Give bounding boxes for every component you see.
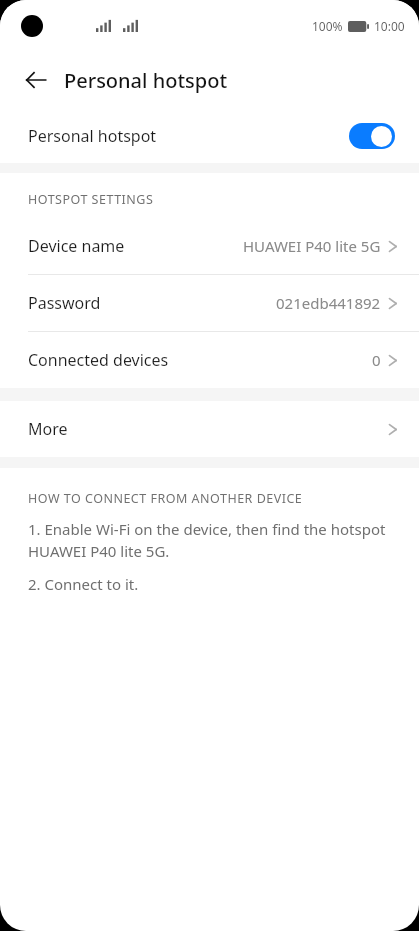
staticText: More: [28, 418, 68, 440]
button[interactable]: Password: [0, 275, 419, 331]
button[interactable]: Device name: [0, 218, 419, 274]
staticText: 021edb441892: [276, 293, 381, 313]
button[interactable]: More: [0, 401, 419, 457]
button[interactable]: Connected devices: [0, 332, 419, 388]
staticText: 10:00: [374, 18, 405, 34]
staticText: HOW TO CONNECT FROM ANOTHER DEVICE: [28, 490, 303, 507]
staticText: HUAWEI P40 lite 5G: [243, 236, 381, 256]
staticText: 1. Enable Wi-Fi on the device, then find…: [28, 519, 393, 562]
staticText: Connected devices: [28, 349, 169, 371]
button[interactable]: Personal hotspot: [0, 108, 419, 163]
staticText: 0: [372, 350, 381, 370]
button[interactable]: Back: [14, 58, 58, 102]
other: Personal hotspot toggle, on: [349, 123, 395, 149]
staticText: Device name: [28, 235, 125, 257]
staticText: 2. Connect to it.: [28, 574, 139, 594]
staticText: HOTSPOT SETTINGS: [28, 191, 154, 208]
staticText: 100%: [312, 18, 343, 34]
staticText: Personal hotspot: [64, 67, 228, 94]
staticText: Personal hotspot: [28, 125, 157, 147]
staticText: Password: [28, 292, 101, 314]
